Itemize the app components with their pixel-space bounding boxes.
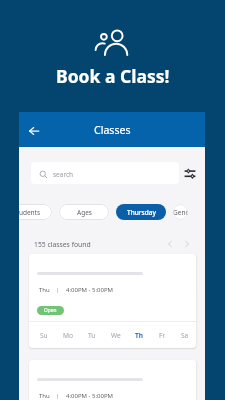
staticText: Students [19,208,41,217]
staticText: Book a Class! [56,64,170,88]
staticText: Th [135,331,144,340]
staticText: Gender [173,208,188,217]
button[interactable]: Thursday [116,204,166,220]
staticText: Mo [63,331,73,340]
button[interactable]: search [31,162,179,184]
staticText: Open [44,307,57,314]
button[interactable]: Ages [59,204,109,220]
staticText: Tu [88,331,96,340]
button[interactable]: Previous page [164,238,176,250]
staticText: Ages [77,208,92,217]
staticText: Sa [181,331,189,340]
button[interactable]: Next page [181,238,193,250]
button[interactable]: Filter [181,165,199,183]
button[interactable]: Students [19,204,52,220]
staticText: Thursday [127,208,156,217]
staticText: 4:00PM - 5:00PM [66,286,114,294]
staticText: Su [40,331,48,340]
staticText: | [56,286,60,294]
staticText: Thu [39,392,50,400]
staticText: 155 classes found [34,240,91,249]
staticText: 4:00PM - 5:00PM [66,392,114,400]
button[interactable]: Thu [29,360,196,400]
staticText: We [111,331,121,340]
staticText: | [56,392,60,400]
staticText: search [53,170,74,179]
button[interactable]: Thu [29,254,196,348]
staticText: Classes [94,123,131,137]
staticText: Fr [159,331,166,340]
button[interactable]: Back [25,122,42,139]
button[interactable]: Gender [173,204,188,220]
staticText: Thu [39,286,50,294]
